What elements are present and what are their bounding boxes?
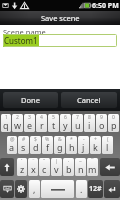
staticText: l bbox=[106, 141, 109, 153]
staticText: t bbox=[52, 119, 56, 131]
button[interactable]: Settings bbox=[15, 180, 27, 198]
staticText: @ bbox=[10, 136, 15, 143]
button[interactable]: ¯ bbox=[87, 158, 98, 176]
staticText: f bbox=[46, 141, 50, 153]
staticText: j bbox=[82, 141, 85, 153]
staticText: q bbox=[3, 119, 9, 131]
staticText: 9 bbox=[100, 114, 103, 121]
button[interactable]: Cancel bbox=[61, 92, 117, 108]
staticText: $ bbox=[34, 136, 37, 143]
staticText: 6:50 PM bbox=[92, 1, 119, 11]
staticText: i bbox=[88, 119, 91, 131]
button[interactable]: % bbox=[42, 136, 53, 154]
staticText: ´ bbox=[21, 158, 23, 165]
button[interactable]: , bbox=[29, 180, 40, 198]
button[interactable]: 4 bbox=[36, 114, 47, 132]
staticText: Cancel bbox=[77, 95, 101, 105]
staticText: 8 bbox=[88, 114, 91, 121]
staticText: Custom1 bbox=[4, 35, 38, 46]
staticText: ¯ bbox=[91, 158, 94, 165]
staticText: c bbox=[42, 163, 47, 175]
button[interactable]: & bbox=[54, 136, 65, 154]
button[interactable]: - bbox=[78, 136, 89, 154]
staticText: * bbox=[70, 136, 73, 143]
staticText: a bbox=[9, 141, 15, 153]
staticText: ¨ bbox=[32, 158, 35, 165]
staticText: 2 bbox=[16, 114, 19, 121]
staticText: | bbox=[55, 158, 58, 165]
staticText: + bbox=[94, 136, 97, 143]
staticText: p bbox=[111, 119, 117, 131]
staticText: w bbox=[14, 119, 22, 131]
staticText: 5 bbox=[52, 114, 55, 121]
button[interactable]: Hide keyboard bbox=[0, 180, 14, 198]
staticText: z bbox=[20, 163, 25, 175]
staticText: u bbox=[75, 119, 81, 131]
button[interactable]: Custom1 bbox=[3, 34, 117, 47]
staticText: 6 bbox=[64, 114, 67, 121]
staticText: 7 bbox=[76, 114, 79, 121]
button[interactable]: 6 bbox=[60, 114, 71, 132]
staticText: 4 bbox=[40, 114, 43, 121]
staticText: % bbox=[45, 136, 50, 143]
staticText: 1 bbox=[5, 114, 8, 121]
staticText: · bbox=[68, 158, 70, 165]
button[interactable]: ¨ bbox=[28, 158, 38, 176]
button[interactable]: . bbox=[76, 180, 87, 198]
staticText: d bbox=[33, 141, 39, 153]
staticText: 3 bbox=[28, 114, 31, 121]
staticText: ˇ bbox=[43, 158, 46, 165]
staticText: k bbox=[93, 141, 98, 153]
staticText: ( bbox=[107, 136, 109, 143]
staticText: v bbox=[54, 163, 59, 175]
button[interactable]: | bbox=[51, 158, 62, 176]
button[interactable]: ˇ bbox=[39, 158, 50, 176]
button[interactable]: $ bbox=[30, 136, 41, 154]
staticText: g bbox=[57, 141, 63, 153]
staticText: 12# bbox=[89, 184, 102, 194]
button[interactable]: 0 bbox=[108, 114, 119, 132]
staticText: # bbox=[22, 136, 26, 143]
button[interactable]: 1 bbox=[1, 114, 11, 132]
button[interactable]: * bbox=[66, 136, 77, 154]
staticText: ~ bbox=[79, 158, 82, 165]
button[interactable]: Space bbox=[41, 180, 74, 198]
button[interactable]: · bbox=[63, 158, 74, 176]
button[interactable]: 5 bbox=[48, 114, 59, 132]
button[interactable]: ( bbox=[102, 136, 113, 154]
staticText: y bbox=[63, 119, 68, 131]
staticText: e bbox=[27, 119, 33, 131]
staticText: . bbox=[80, 183, 83, 195]
staticText: b bbox=[66, 163, 72, 175]
staticText: Save scene bbox=[41, 13, 80, 23]
button[interactable]: Symbols bbox=[88, 180, 103, 198]
button[interactable]: Enter bbox=[104, 180, 120, 198]
staticText: n bbox=[78, 163, 84, 175]
button[interactable]: # bbox=[18, 136, 29, 154]
button[interactable]: 2 bbox=[12, 114, 23, 132]
staticText: & bbox=[58, 136, 62, 143]
staticText: , bbox=[33, 183, 36, 195]
button[interactable]: 9 bbox=[96, 114, 107, 132]
staticText: o bbox=[99, 119, 105, 131]
button[interactable]: 8 bbox=[84, 114, 95, 132]
staticText: m bbox=[88, 163, 97, 175]
staticText: - bbox=[83, 136, 85, 143]
button[interactable]: 7 bbox=[72, 114, 83, 132]
button[interactable]: @ bbox=[7, 136, 17, 154]
staticText: Done bbox=[21, 95, 40, 105]
button[interactable]: ~ bbox=[75, 158, 86, 176]
button[interactable]: Backspace bbox=[100, 158, 120, 176]
staticText: r bbox=[40, 119, 44, 131]
staticText: h bbox=[69, 141, 75, 153]
button[interactable]: ´ bbox=[17, 158, 27, 176]
button[interactable]: 3 bbox=[24, 114, 35, 132]
button[interactable]: + bbox=[90, 136, 101, 154]
staticText: 0 bbox=[112, 114, 115, 121]
button[interactable]: Shift bbox=[0, 158, 14, 176]
staticText: Scene name bbox=[3, 27, 46, 37]
button[interactable]: Done bbox=[3, 92, 58, 108]
staticText: x bbox=[31, 163, 36, 175]
staticText: s bbox=[21, 141, 26, 153]
